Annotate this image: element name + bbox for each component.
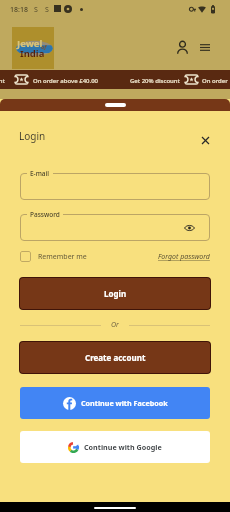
button[interactable] xyxy=(20,173,210,200)
staticText: Continue with Facebook xyxy=(81,398,168,408)
button[interactable]: Continue with Google xyxy=(20,431,210,463)
button[interactable]: Account xyxy=(171,36,193,58)
staticText: India xyxy=(20,47,45,60)
staticText: Login xyxy=(19,129,46,143)
staticText: 18:18 xyxy=(10,5,28,15)
staticText: Create account xyxy=(85,352,146,363)
button[interactable]: Jewel of India home xyxy=(12,27,54,69)
button[interactable]: Menu xyxy=(194,36,216,58)
button[interactable]: Create account xyxy=(20,342,210,373)
button[interactable]: Login xyxy=(20,278,210,309)
staticText: Get 20% discount xyxy=(130,77,180,85)
button[interactable]: Forgot password xyxy=(158,252,210,262)
staticText: unt xyxy=(0,77,5,85)
staticText: Jewel xyxy=(17,37,43,50)
staticText: Password xyxy=(30,210,60,219)
staticText: Forgot password xyxy=(158,252,210,262)
button[interactable]: Continue with Facebook xyxy=(20,387,210,419)
staticText: S xyxy=(45,5,49,15)
button[interactable]: Remember me xyxy=(20,251,87,262)
staticText: S xyxy=(34,5,38,15)
staticText: Continue with Google xyxy=(84,442,162,452)
staticText: Or xyxy=(111,320,119,330)
staticText: On order above £40.00 xyxy=(33,77,99,85)
button[interactable]: Show password xyxy=(182,221,196,235)
staticText: of xyxy=(41,43,47,50)
button[interactable]: Close xyxy=(195,130,213,148)
staticText: Login xyxy=(104,288,127,299)
button[interactable]: Show password xyxy=(20,214,210,241)
staticText: On order xyxy=(202,77,228,85)
staticText: E-mail xyxy=(30,169,50,178)
staticText: Remember me xyxy=(38,252,87,262)
